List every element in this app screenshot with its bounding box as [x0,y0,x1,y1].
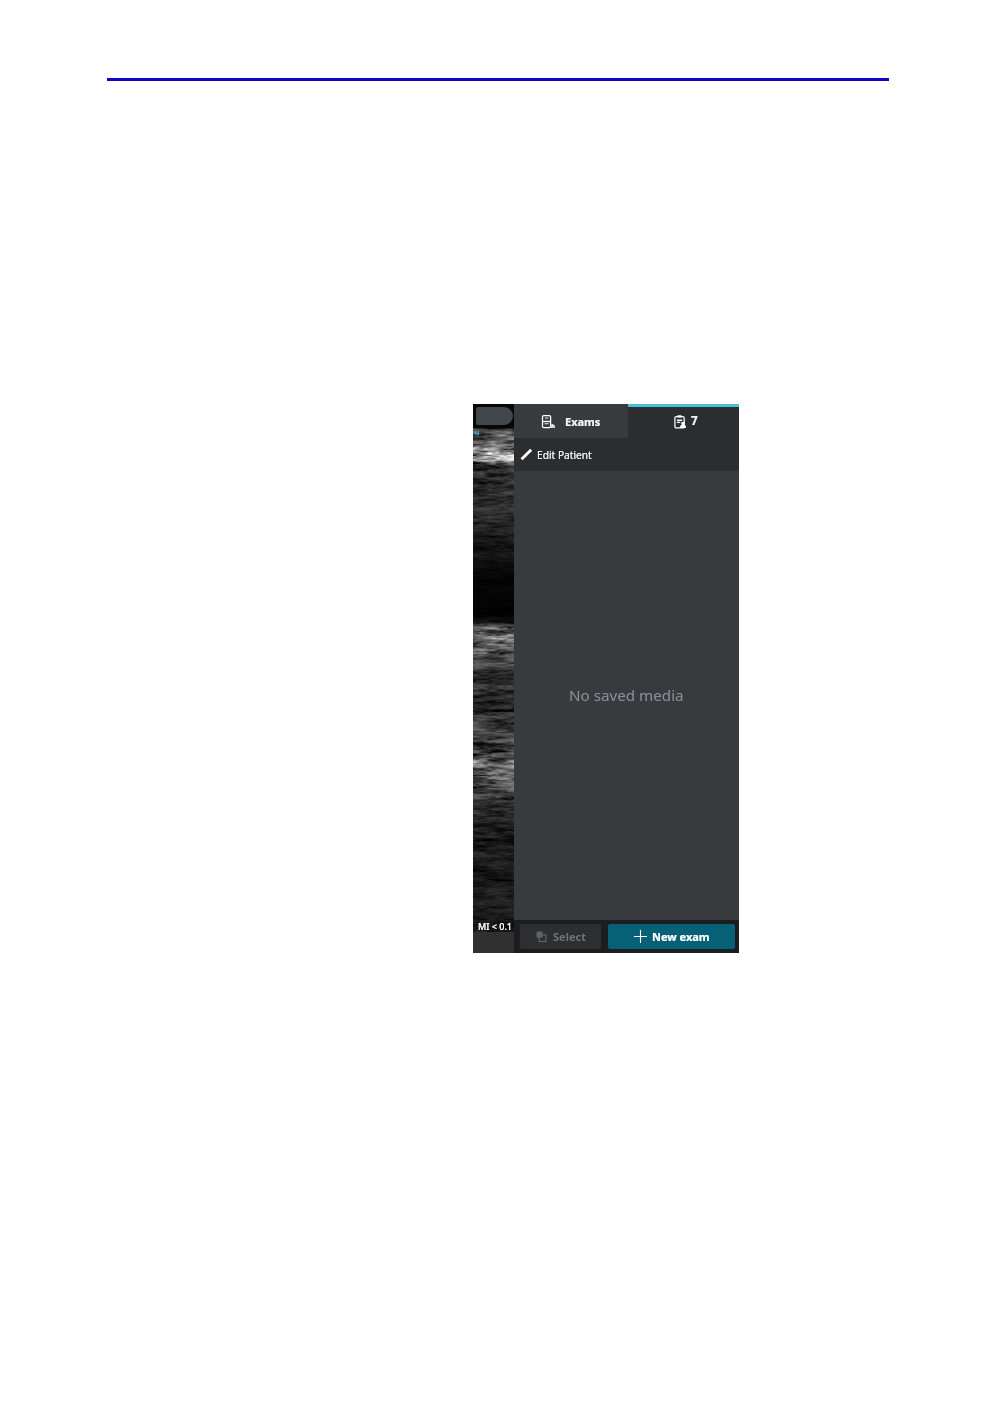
other: Edit Patient [520,448,533,461]
button[interactable]: Exams [514,404,628,438]
other: Select media [536,931,547,942]
button[interactable]: Expand imaging panel [476,407,513,425]
other: Exams [541,414,556,429]
staticText: New exam [652,929,710,944]
other: Patients [674,414,689,429]
button[interactable]: Live ultrasound image [473,404,514,953]
staticText: Select [553,929,586,944]
staticText: MI < 0.1 [478,920,513,932]
staticText: Exams [565,414,601,429]
staticText: Save to [558,923,590,935]
button[interactable]: Select media [520,924,601,949]
staticText: 7 [691,413,698,429]
button[interactable]: New exam [608,924,735,949]
staticText: Edit Patient [537,448,592,462]
button[interactable]: Edit Patient [514,438,739,471]
staticText: No saved media [569,685,684,706]
button[interactable]: Patients [628,404,739,438]
